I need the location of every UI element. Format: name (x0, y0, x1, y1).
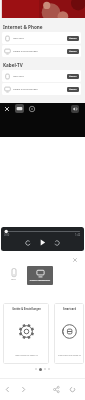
button[interactable]: Mein Tarif (2, 32, 81, 44)
button[interactable]: Tarif (8, 268, 19, 281)
button[interactable]: Öffnen (67, 49, 79, 54)
staticText: Geräte & Einstellungen (12, 307, 41, 310)
button[interactable]: Close (71, 256, 79, 264)
button[interactable]: Öffnen (67, 87, 79, 92)
button[interactable]: Volume (71, 105, 79, 113)
button[interactable]: Mein Tarif (2, 70, 81, 82)
button[interactable]: Geräte & Einstellungen (2, 45, 81, 57)
staticText: Geräte & Einstellungen (13, 88, 38, 91)
button[interactable]: Öffnen (67, 36, 79, 41)
button[interactable]: Rotate (28, 105, 36, 113)
staticText: Geräte & Einstellungen (13, 50, 38, 53)
button[interactable]: Smartcard (54, 303, 84, 364)
button[interactable]: Öffnen (67, 74, 79, 79)
button[interactable]: Forward 10 seconds (53, 239, 61, 247)
staticText: Tarif (11, 278, 16, 281)
staticText: Mein Tarif (13, 75, 24, 78)
button[interactable]: Rewind 10 seconds (24, 239, 32, 247)
button[interactable]: Back (2, 384, 13, 395)
staticText: Mein Guide für Kabel-TV (15, 354, 38, 357)
staticText: Öffnen (69, 75, 77, 78)
button[interactable]: Play (38, 238, 47, 247)
staticText: Öffnen (69, 88, 77, 91)
staticText: 1:42 (75, 233, 81, 236)
staticText: Internet & Phone (3, 24, 43, 30)
button[interactable]: Geräte & Einstellungen (2, 83, 81, 95)
staticText: Öffnen (69, 37, 77, 40)
staticText: Mein Tarif (13, 37, 24, 40)
staticText: Öffnen (69, 50, 77, 53)
button[interactable]: Geräte & Einstellungen (3, 303, 49, 364)
staticText: Smartcard und Guide-TV (58, 354, 81, 357)
button[interactable]: Reload (67, 384, 78, 395)
button[interactable]: Share (51, 384, 62, 395)
button[interactable]: Close (3, 105, 11, 113)
staticText: 0:00 (4, 233, 10, 236)
staticText: Smartcard (63, 307, 76, 310)
button[interactable]: Geräte & Einstellungen (27, 266, 53, 285)
staticText: Geräte & Einstellungen (27, 279, 53, 282)
staticText: Kabel-TV (3, 62, 23, 68)
button[interactable]: Camera (15, 104, 24, 113)
button[interactable]: Forward (18, 384, 29, 395)
